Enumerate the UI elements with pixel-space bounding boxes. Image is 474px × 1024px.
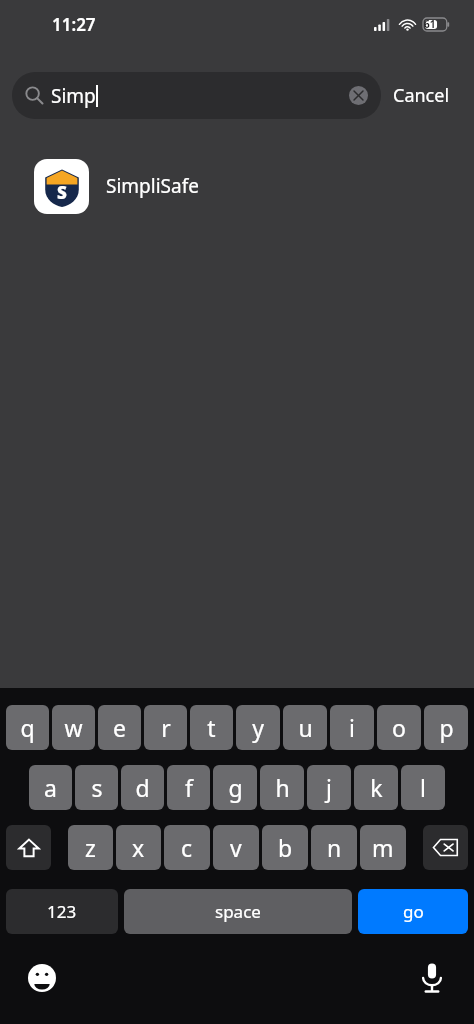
staticText: x	[132, 832, 145, 863]
staticText: i	[349, 712, 355, 743]
button[interactable]: Simp	[12, 72, 381, 119]
button[interactable]: a	[29, 765, 72, 810]
button[interactable]: e	[98, 705, 141, 750]
button[interactable]: r	[144, 705, 187, 750]
button[interactable]: w	[52, 705, 95, 750]
button[interactable]: S	[0, 150, 474, 222]
staticText: n	[327, 832, 342, 863]
staticText: SimpliSafe	[106, 173, 199, 199]
button[interactable]: Backspace	[423, 825, 468, 870]
staticText: w	[64, 712, 83, 743]
button[interactable]: p	[424, 705, 468, 750]
button[interactable]: m	[360, 825, 406, 870]
staticText: d	[135, 772, 150, 803]
button[interactable]: i	[330, 705, 374, 750]
button[interactable]: f	[167, 765, 210, 810]
button[interactable]: s	[75, 765, 118, 810]
button[interactable]: space	[124, 889, 352, 934]
staticText: e	[113, 712, 126, 743]
button[interactable]: j	[307, 765, 351, 810]
staticText: v	[230, 832, 242, 863]
staticText: b	[278, 832, 293, 863]
button[interactable]: x	[116, 825, 161, 870]
button[interactable]: Shift	[6, 825, 51, 870]
staticText: z	[85, 832, 96, 863]
button[interactable]: h	[260, 765, 304, 810]
staticText: r	[161, 712, 171, 743]
button[interactable]: y	[236, 705, 280, 750]
staticText: a	[44, 772, 57, 803]
button[interactable]: z	[68, 825, 113, 870]
button[interactable]: Emoji keyboard	[20, 956, 64, 1000]
button[interactable]: g	[213, 765, 257, 810]
button[interactable]: go	[358, 889, 468, 934]
button[interactable]: b	[262, 825, 308, 870]
staticText: p	[439, 712, 454, 743]
staticText: m	[372, 832, 394, 863]
button[interactable]: n	[311, 825, 357, 870]
staticText: u	[298, 712, 313, 743]
staticText: h	[275, 772, 290, 803]
staticText: 123	[47, 900, 77, 923]
button[interactable]: c	[164, 825, 210, 870]
button[interactable]: l	[401, 765, 445, 810]
button[interactable]: u	[283, 705, 327, 750]
button[interactable]: Clear search	[349, 86, 368, 105]
staticText: q	[20, 712, 35, 743]
staticText: space	[215, 900, 261, 923]
staticText: 11:27	[52, 13, 96, 36]
staticText: l	[420, 772, 426, 803]
staticText: j	[326, 772, 332, 803]
staticText: y	[252, 712, 264, 743]
button[interactable]: q	[6, 705, 49, 750]
staticText: f	[185, 772, 193, 803]
button[interactable]: v	[213, 825, 259, 870]
button[interactable]: Dictation	[410, 956, 454, 1000]
staticText: go	[403, 900, 424, 923]
staticText: 61	[424, 17, 436, 31]
staticText: s	[91, 772, 103, 803]
staticText: k	[370, 772, 383, 803]
staticText: Cancel	[393, 83, 450, 108]
button[interactable]: 123	[6, 889, 118, 934]
staticText: g	[228, 772, 243, 803]
button[interactable]: Cancel	[381, 75, 462, 116]
staticText: c	[181, 832, 193, 863]
button[interactable]: d	[121, 765, 164, 810]
staticText: Simp	[51, 83, 96, 109]
staticText: t	[207, 712, 216, 743]
button[interactable]: o	[377, 705, 421, 750]
button[interactable]: k	[354, 765, 398, 810]
staticText: o	[392, 712, 406, 743]
staticText: S	[57, 181, 67, 204]
button[interactable]: t	[190, 705, 233, 750]
